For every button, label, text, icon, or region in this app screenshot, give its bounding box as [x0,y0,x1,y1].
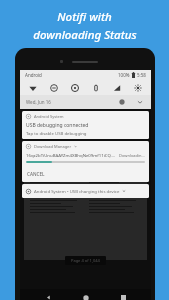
staticText: Android [25,72,42,78]
staticText: Notifi with [57,9,112,25]
button[interactable]: Flashlight [129,80,147,95]
button[interactable]: Mobile data [108,80,126,95]
staticText: USB debugging connected [26,122,89,129]
button[interactable]: CANCEL [26,170,46,178]
staticText: Android System • USB charging this devic… [34,188,120,194]
staticText: 100% [118,72,130,78]
staticText: downloading Status [33,27,137,43]
button[interactable]: Auto rotate [66,80,84,95]
button[interactable]: Do not disturb [45,80,63,95]
staticText: 5:58 [137,72,146,78]
staticText: Download Manager [34,144,72,149]
button[interactable]: Back [39,289,57,300]
staticText: 16qz2bTiUnuBAAYZm4XBhqNe09mf11iCQ.pdf [26,152,117,158]
staticText: Tap to disable USB debugging [26,130,87,136]
staticText: Downloadin… [119,153,145,158]
button[interactable]: Download Manager [22,141,149,182]
staticText: Wed, Jun 16 [26,99,51,105]
button[interactable]: Android System [22,111,149,139]
button[interactable]: Expand [135,97,145,107]
button[interactable]: Settings [117,97,127,107]
button[interactable]: Android System • USB charging this devic… [22,184,149,198]
button[interactable]: Wi-Fi [24,80,42,95]
staticText: Android System [34,114,64,119]
staticText: CANCEL [27,171,45,177]
button[interactable]: Recents [114,289,132,300]
button[interactable]: Battery saver [87,80,105,95]
button[interactable]: Home [77,289,95,300]
staticText: Page 4 of 1,044 [71,258,100,263]
